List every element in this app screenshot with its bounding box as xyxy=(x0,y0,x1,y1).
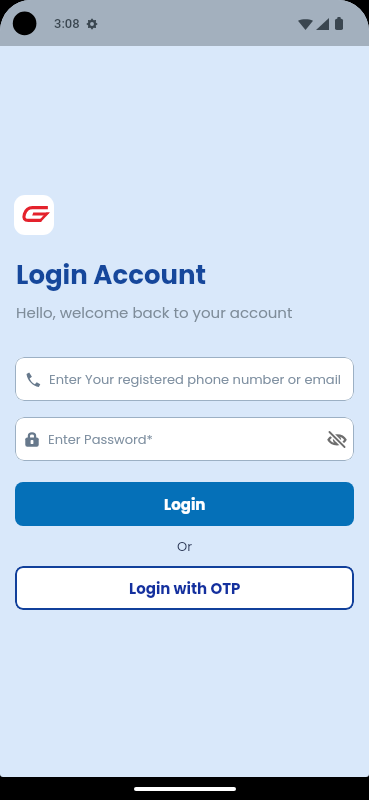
staticText: Hello, welcome back to your account xyxy=(16,302,293,323)
button[interactable]: Enter Your registered phone number or em… xyxy=(15,357,354,401)
staticText: Login Account xyxy=(16,257,207,293)
staticText: Login with OTP xyxy=(129,578,241,599)
staticText: Login xyxy=(164,494,206,515)
staticText: 3:08 xyxy=(54,16,80,31)
button[interactable]: Enter Password* xyxy=(15,417,354,461)
staticText: Enter Password* xyxy=(48,430,153,448)
button[interactable]: Show password xyxy=(324,426,350,452)
button[interactable]: Login xyxy=(15,482,354,526)
button[interactable]: Login with OTP xyxy=(15,566,354,610)
staticText: Enter Your registered phone number or em… xyxy=(49,370,342,388)
staticText: Or xyxy=(177,537,193,555)
